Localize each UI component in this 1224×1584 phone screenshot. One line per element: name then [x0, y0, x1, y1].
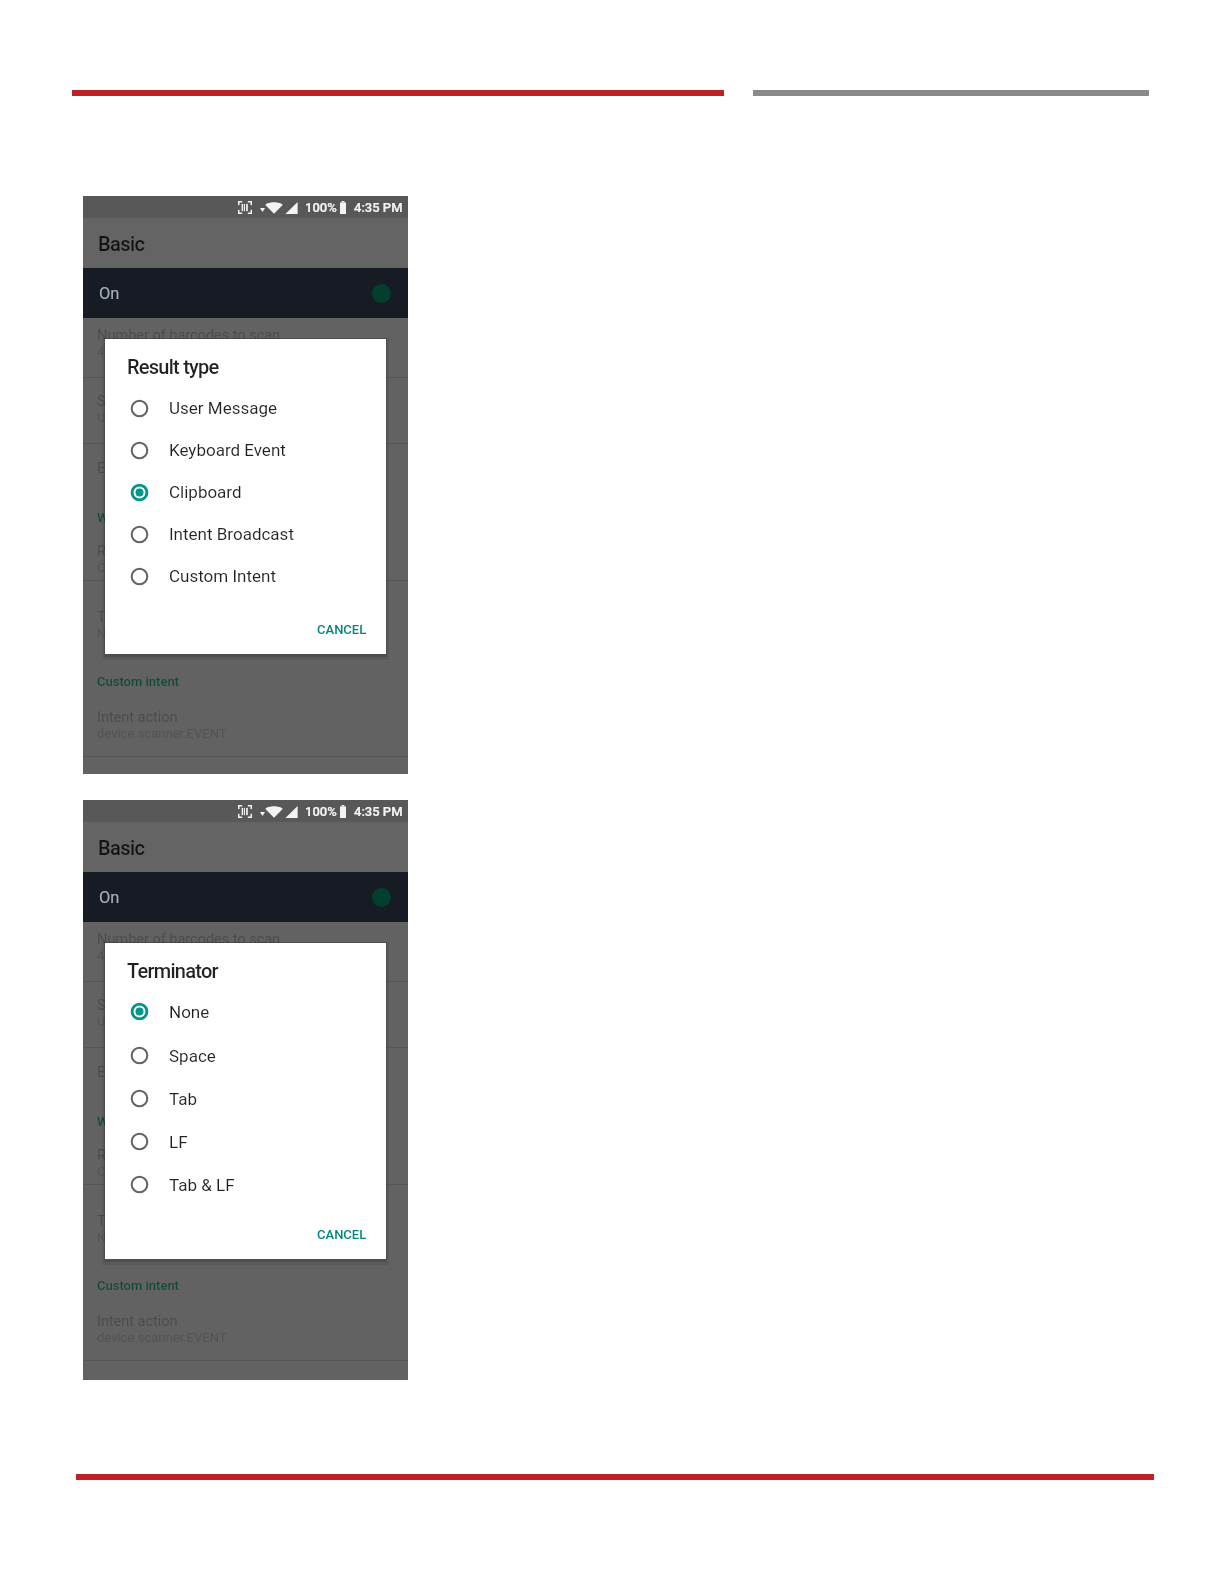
staticText: Tab	[169, 1089, 197, 1109]
staticText: Clipboard	[97, 1164, 153, 1179]
button[interactable]	[83, 532, 408, 580]
button[interactable]: Intent Broadcast	[105, 513, 386, 555]
staticText: Wedge	[97, 510, 137, 525]
staticText: Result type	[127, 355, 219, 378]
button[interactable]: Toggle scanner on	[372, 888, 391, 907]
staticText: UPC/EAN	[97, 410, 153, 425]
staticText: Terminator	[97, 1212, 168, 1229]
staticText: device.scanner.EVENT	[97, 726, 227, 741]
staticText: Result type	[97, 542, 169, 559]
staticText: Number of barcodes to scan	[97, 930, 281, 947]
button[interactable]	[83, 1184, 408, 1248]
staticText: Intent Broadcast	[169, 524, 294, 544]
button[interactable]	[83, 443, 408, 498]
staticText: 4:35 PM	[354, 200, 403, 215]
staticText: 4	[97, 948, 105, 963]
button[interactable]: Keyboard Event	[105, 429, 386, 471]
staticText: Scan mode	[97, 996, 170, 1013]
button[interactable]	[83, 981, 408, 1047]
staticText: device.scanner.EVENT	[97, 1330, 227, 1345]
button[interactable]: Toggle scanner on	[372, 284, 391, 303]
button[interactable]: CANCEL	[309, 1220, 375, 1249]
staticText: 100%	[305, 200, 337, 215]
button[interactable]	[83, 377, 408, 443]
button[interactable]	[83, 1047, 408, 1102]
button[interactable]: Custom Intent	[105, 555, 386, 597]
staticText: Space	[169, 1046, 216, 1066]
staticText: 100%	[305, 804, 337, 819]
staticText: Clipboard	[97, 560, 153, 575]
button[interactable]: User Message	[105, 387, 386, 429]
staticText: Custom intent	[97, 674, 179, 689]
button[interactable]	[83, 922, 408, 981]
button[interactable]	[83, 1136, 408, 1184]
staticText: User Message	[169, 398, 278, 418]
staticText: Wedge	[97, 1114, 137, 1129]
staticText: End of scan	[97, 459, 173, 476]
staticText: 4	[97, 344, 105, 359]
button[interactable]: None	[105, 990, 386, 1033]
staticText: LF	[169, 1132, 188, 1152]
staticText: None	[169, 1002, 210, 1022]
button[interactable]	[83, 580, 408, 644]
staticText: CANCEL	[317, 622, 367, 637]
button[interactable]: On	[83, 872, 408, 922]
staticText: Terminator	[97, 608, 168, 625]
button[interactable]: Space	[105, 1034, 386, 1077]
staticText: Intent action	[97, 1312, 178, 1329]
staticText: Clipboard	[169, 482, 242, 502]
staticText: Intent action	[97, 708, 178, 725]
staticText: UPC/EAN	[97, 1014, 153, 1029]
staticText: Scan mode	[97, 392, 170, 409]
staticText: Number of barcodes to scan	[97, 326, 281, 343]
button[interactable]	[83, 318, 408, 377]
button[interactable]: Tab	[105, 1077, 386, 1120]
staticText: Basic	[98, 836, 145, 859]
staticText: Custom Intent	[169, 566, 276, 586]
staticText: Tab & LF	[169, 1175, 235, 1195]
staticText: Keyboard Event	[169, 440, 286, 460]
staticText: Result type	[97, 1146, 169, 1163]
staticText: Basic	[98, 232, 145, 255]
button[interactable]: LF	[105, 1120, 386, 1163]
staticText: None	[97, 626, 128, 641]
staticText: Custom intent	[97, 1278, 179, 1293]
staticText: None	[97, 1230, 128, 1245]
staticText: On	[99, 284, 120, 303]
staticText: On	[99, 888, 120, 907]
staticText: 4:35 PM	[354, 804, 403, 819]
button[interactable]: CANCEL	[309, 615, 375, 644]
button[interactable]: Tab & LF	[105, 1163, 386, 1206]
staticText: CANCEL	[317, 1227, 367, 1242]
button[interactable]: Clipboard	[105, 471, 386, 513]
staticText: End of scan	[97, 1063, 173, 1080]
button[interactable]: On	[83, 268, 408, 318]
staticText: Terminator	[127, 959, 218, 982]
